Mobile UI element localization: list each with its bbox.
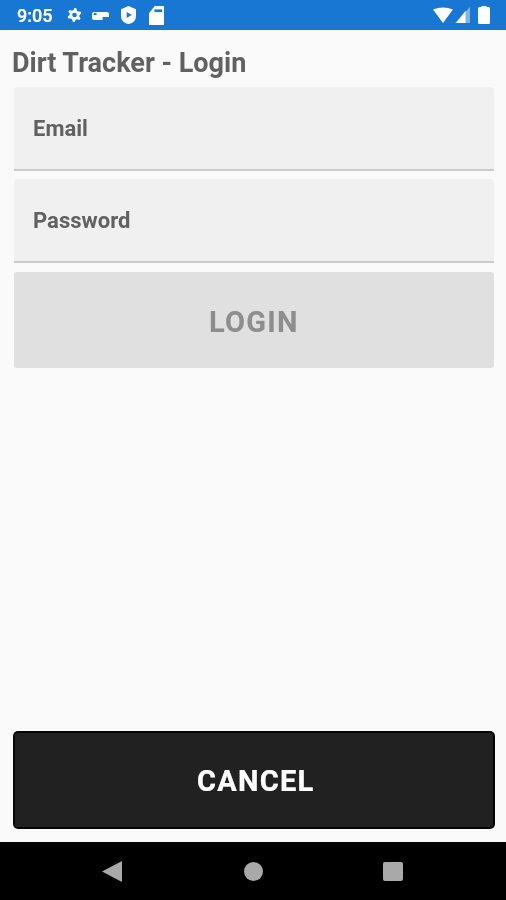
staticText: Dirt Tracker - Login — [12, 47, 247, 79]
staticText: CANCEL — [197, 764, 315, 798]
staticText: LOGIN — [209, 305, 299, 339]
button[interactable]: Home — [227, 845, 279, 897]
button[interactable]: Email — [14, 87, 494, 171]
staticText: Email — [33, 116, 88, 142]
button[interactable]: Password — [14, 179, 494, 263]
button[interactable]: LOGIN — [14, 272, 494, 368]
button[interactable]: CANCEL — [13, 731, 495, 829]
button[interactable]: Recents — [367, 845, 419, 897]
staticText: Password — [33, 208, 131, 234]
button[interactable]: Back — [86, 845, 138, 897]
staticText: 9:05 — [17, 5, 53, 26]
